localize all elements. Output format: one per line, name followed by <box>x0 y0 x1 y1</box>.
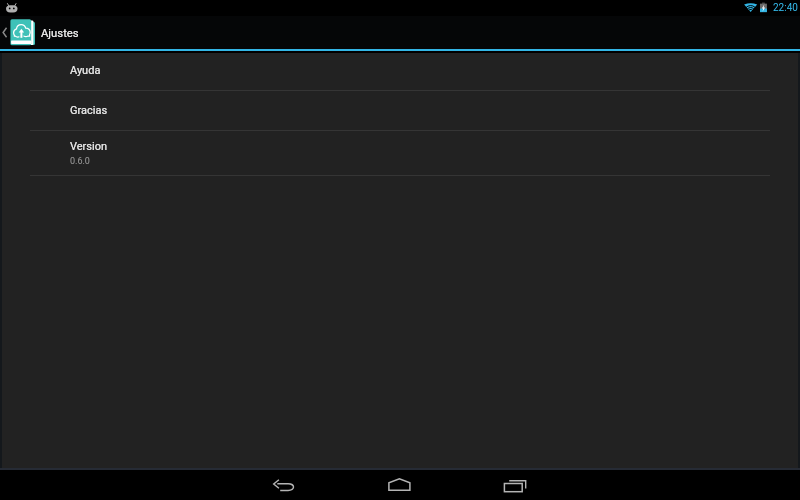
button[interactable]: Back <box>226 470 342 500</box>
button[interactable]: Gracias <box>2 91 798 131</box>
staticText: Gracias <box>70 104 108 117</box>
staticText: 0.6.0 <box>70 156 90 167</box>
staticText: Ayuda <box>70 64 101 77</box>
button[interactable]: Version <box>2 131 798 176</box>
button[interactable]: Ayuda <box>2 53 798 91</box>
button[interactable]: Ajustes <box>0 16 100 49</box>
staticText: 22:40 <box>773 2 798 14</box>
staticText: Version <box>70 140 108 153</box>
button[interactable]: Recent apps <box>458 470 574 500</box>
staticText: Ajustes <box>41 27 79 40</box>
button[interactable]: Home <box>342 470 458 500</box>
